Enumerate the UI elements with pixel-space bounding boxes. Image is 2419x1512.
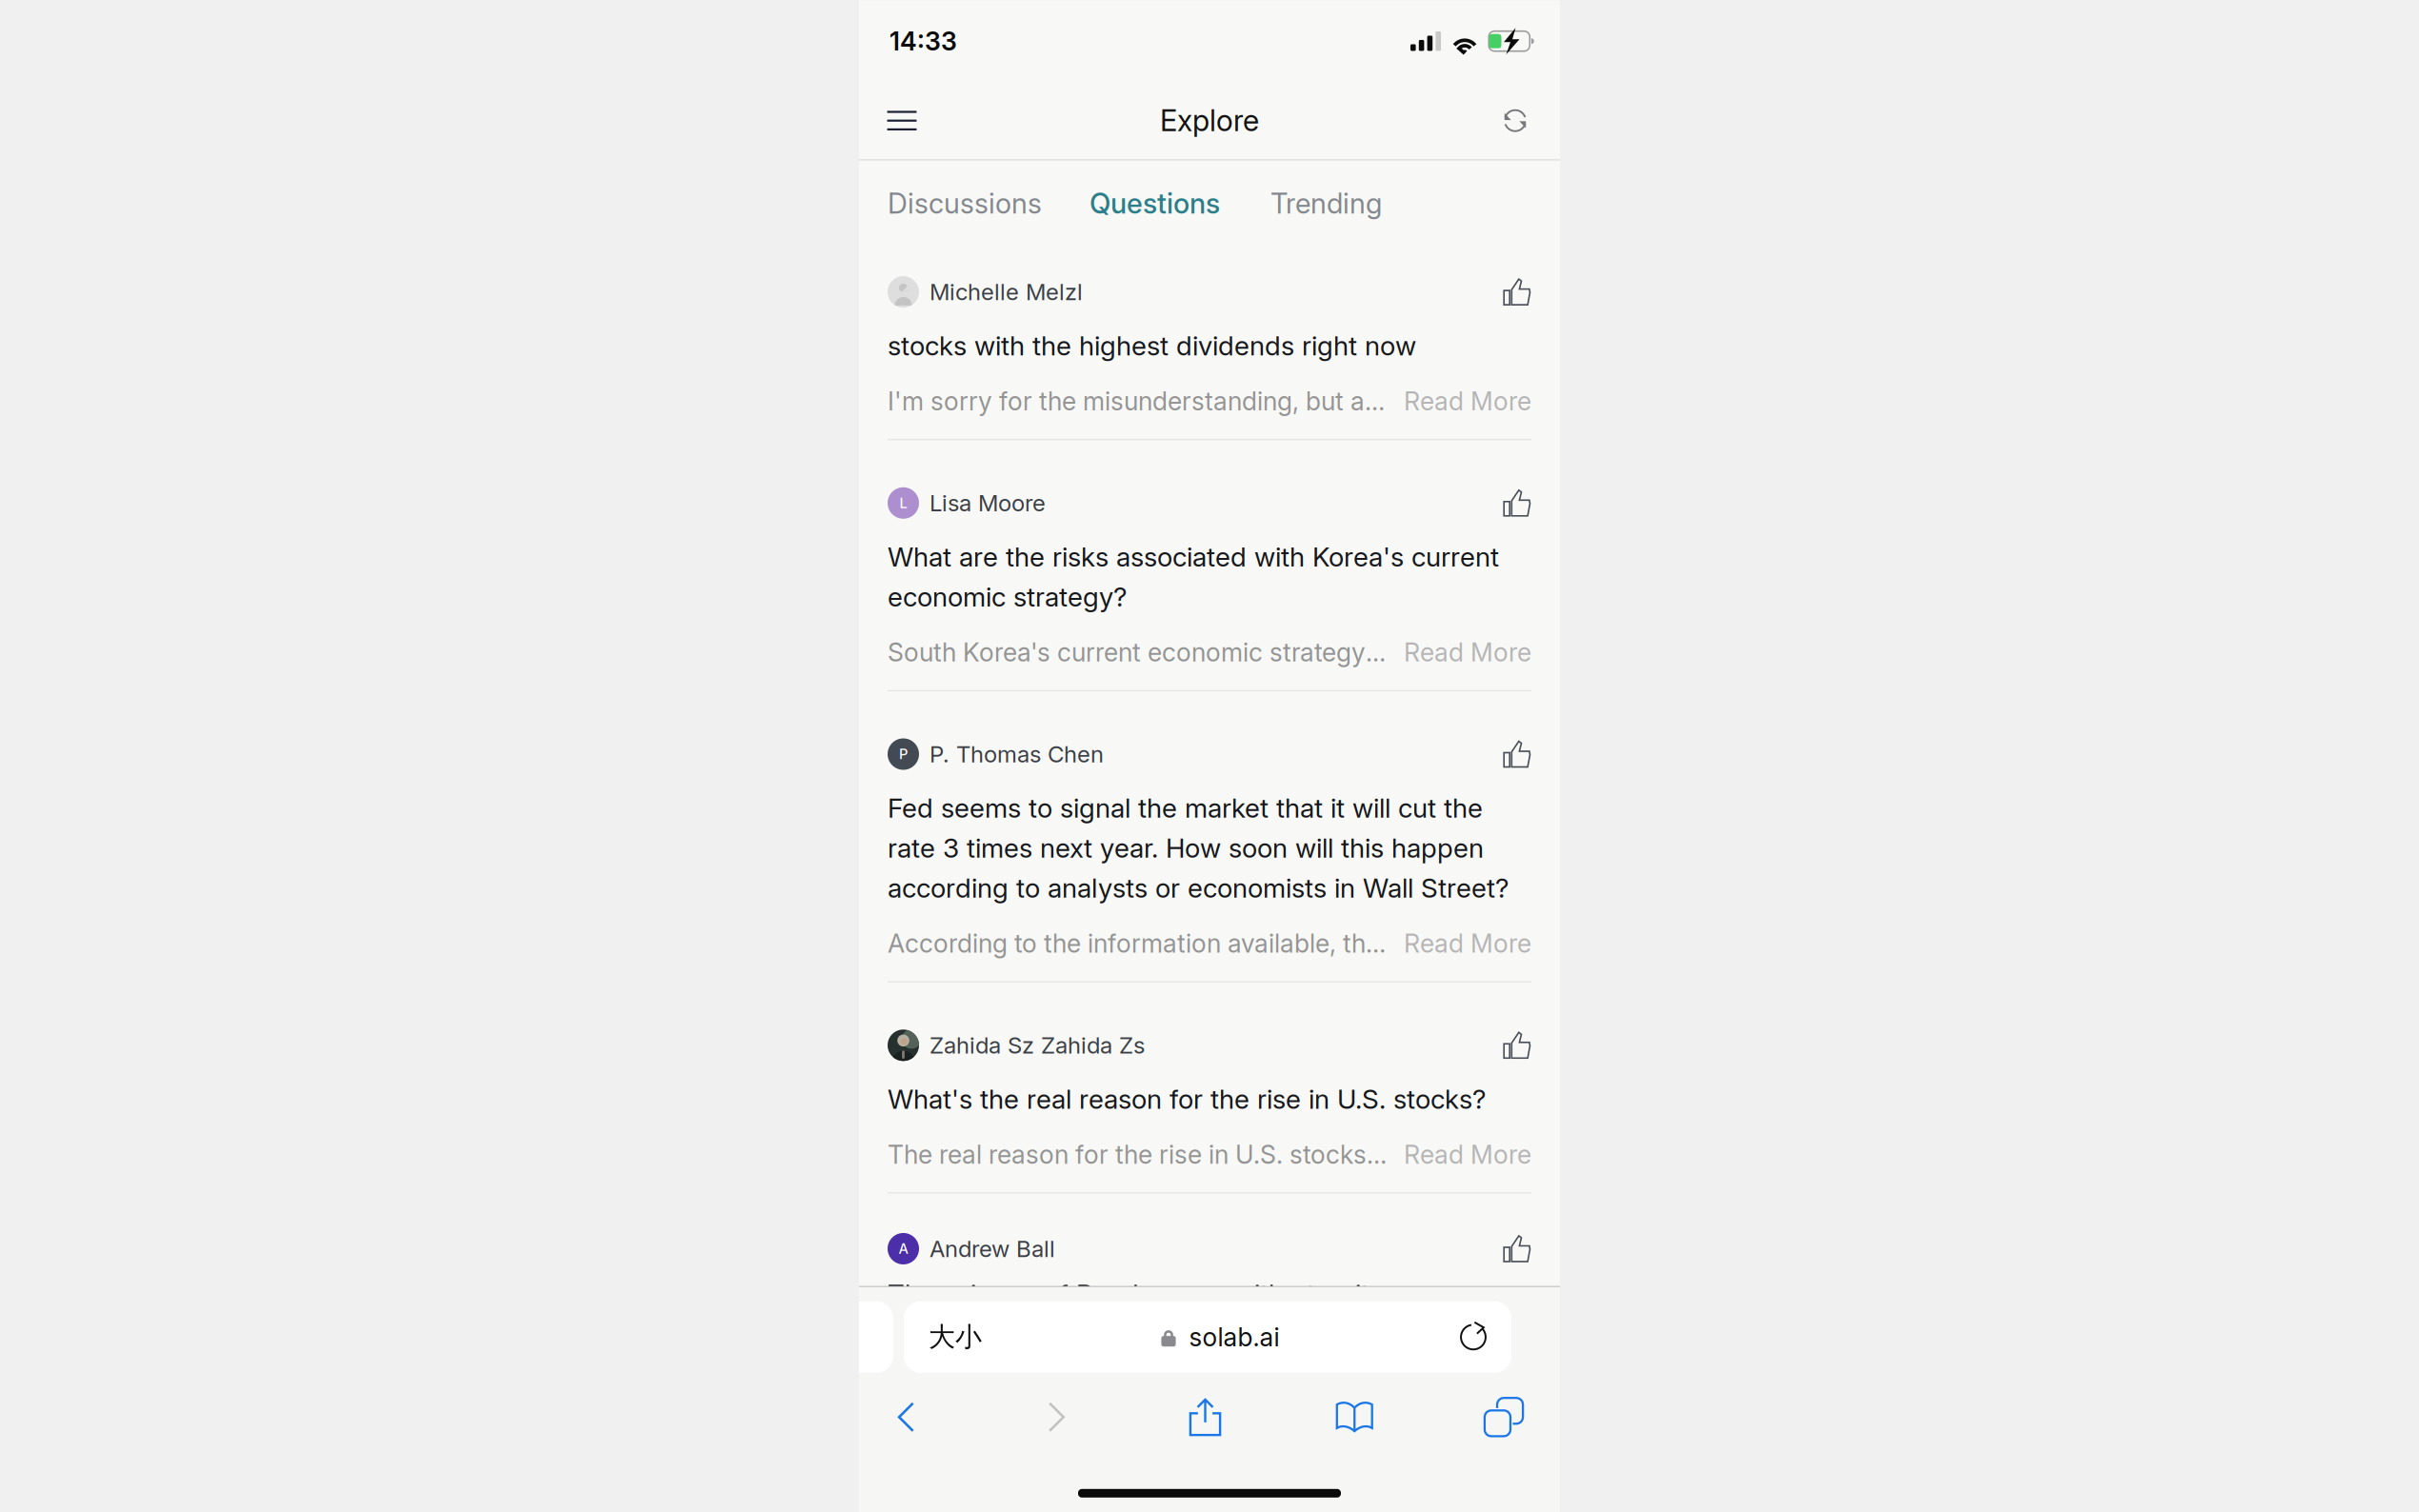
staticText: stocks with the highest dividends right … (888, 330, 1416, 361)
button[interactable]: Menu (880, 99, 924, 143)
button[interactable]: Trending (1220, 187, 1382, 220)
button[interactable]: Tabs (1476, 1389, 1531, 1445)
button[interactable]: Discussions (888, 187, 1042, 220)
staticText: Read More (1390, 1140, 1531, 1170)
staticText: What's the real reason for the rise in U… (888, 1083, 1486, 1115)
button[interactable]: Forward (1028, 1389, 1084, 1445)
button[interactable]: Questions (1042, 187, 1220, 220)
staticText: L (900, 495, 907, 511)
staticText: Discussions (888, 187, 1042, 220)
button[interactable]: Reload (1449, 1313, 1497, 1361)
staticText: Michelle Melzl (930, 278, 1083, 305)
staticText: South Korea's current economic strategy … (888, 637, 1390, 667)
button[interactable]: Like (1503, 740, 1531, 768)
staticText: Read More (1390, 386, 1531, 416)
staticText: According to the information available, … (888, 928, 1390, 958)
button[interactable]: Refresh (1493, 99, 1537, 143)
staticText: P. Thomas Chen (930, 741, 1104, 768)
staticText: What are the risks associated with Korea… (888, 541, 1499, 613)
staticText: Fed seems to signal the market that it w… (888, 792, 1509, 904)
staticText: I'm sorry for the misunderstanding, but … (888, 386, 1390, 416)
staticText: Andrew Ball (930, 1235, 1055, 1262)
button[interactable]: Like (1503, 1234, 1531, 1263)
staticText: The real reason for the rise in U.S. sto… (888, 1140, 1390, 1170)
staticText: Read More (1390, 928, 1531, 958)
staticText: Zahida Sz Zahida Zs (930, 1032, 1145, 1059)
staticText: 14:33 (890, 26, 957, 56)
staticText: Questions (1090, 187, 1220, 220)
button[interactable]: Like (1503, 489, 1531, 517)
button[interactable]: Share (1178, 1389, 1233, 1445)
button[interactable]: Back (879, 1389, 934, 1445)
staticText: A (899, 1240, 908, 1257)
button[interactable]: Like (1503, 278, 1531, 306)
button[interactable]: Bookmarks (1327, 1389, 1382, 1445)
staticText: Trending (1270, 187, 1382, 220)
staticText: P (899, 746, 908, 762)
button[interactable]: Page settings (929, 1308, 1043, 1367)
staticText: The science of Rendezvous with eternity (888, 1278, 1385, 1310)
staticText: Lisa Moore (930, 489, 1046, 516)
staticText: Read More (1390, 637, 1531, 667)
staticText: solab.ai (1189, 1322, 1279, 1352)
staticText: 大小 (929, 1321, 982, 1353)
staticText: Explore (1160, 103, 1259, 138)
button[interactable]: Like (1503, 1031, 1531, 1060)
